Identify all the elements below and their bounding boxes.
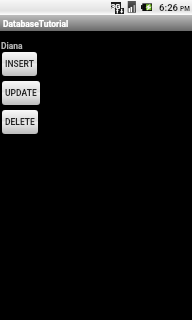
other: 3G network xyxy=(111,2,121,9)
other: Signal strength xyxy=(127,1,136,13)
staticText: DatabaseTutorial xyxy=(3,19,69,29)
staticText: 6:26 xyxy=(159,2,179,13)
staticText: DELETE xyxy=(5,117,35,127)
staticText: Diana xyxy=(1,41,23,51)
staticText: 3G xyxy=(111,2,121,9)
button[interactable]: UPDATE xyxy=(2,81,40,105)
other: Battery charging xyxy=(141,3,152,11)
staticText: PM xyxy=(180,5,190,13)
staticText: UPDATE xyxy=(5,88,37,98)
other: Data activity xyxy=(115,8,124,14)
staticText: INSERT xyxy=(5,59,34,69)
button[interactable]: DELETE xyxy=(2,110,38,134)
button[interactable]: INSERT xyxy=(2,52,37,76)
